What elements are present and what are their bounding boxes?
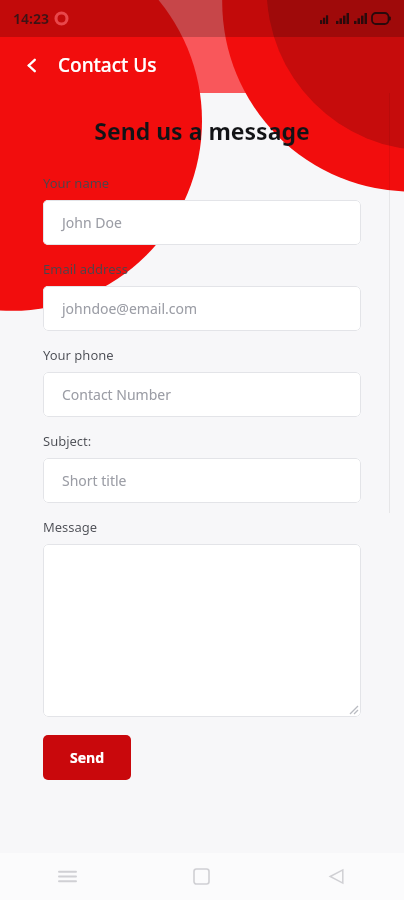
staticText: Subject:	[43, 432, 92, 450]
staticText: Message	[43, 518, 98, 536]
staticText: Your name	[43, 174, 110, 192]
button[interactable]	[43, 544, 361, 717]
button[interactable]: Short title	[43, 458, 361, 503]
staticText: Your phone	[43, 346, 114, 364]
staticText: johndoe@email.com	[62, 299, 198, 318]
staticText: Email address	[43, 260, 128, 278]
button[interactable]: Back	[10, 43, 54, 87]
button[interactable]: Back	[269, 853, 404, 900]
button[interactable]: johndoe@email.com	[43, 286, 361, 331]
staticText: Send	[70, 748, 105, 767]
staticText: Contact Number	[62, 385, 171, 404]
button[interactable]: Recent apps	[0, 853, 134, 900]
button[interactable]: John Doe	[43, 200, 361, 245]
button[interactable]: Send	[43, 735, 131, 780]
button[interactable]: Contact Number	[43, 372, 361, 417]
staticText: Short title	[62, 471, 127, 490]
staticText: Contact Us	[58, 52, 157, 78]
button[interactable]: Home	[134, 853, 269, 900]
staticText: John Doe	[62, 213, 122, 232]
staticText: Send us a message	[94, 115, 310, 146]
staticText: 14:23	[13, 9, 49, 28]
